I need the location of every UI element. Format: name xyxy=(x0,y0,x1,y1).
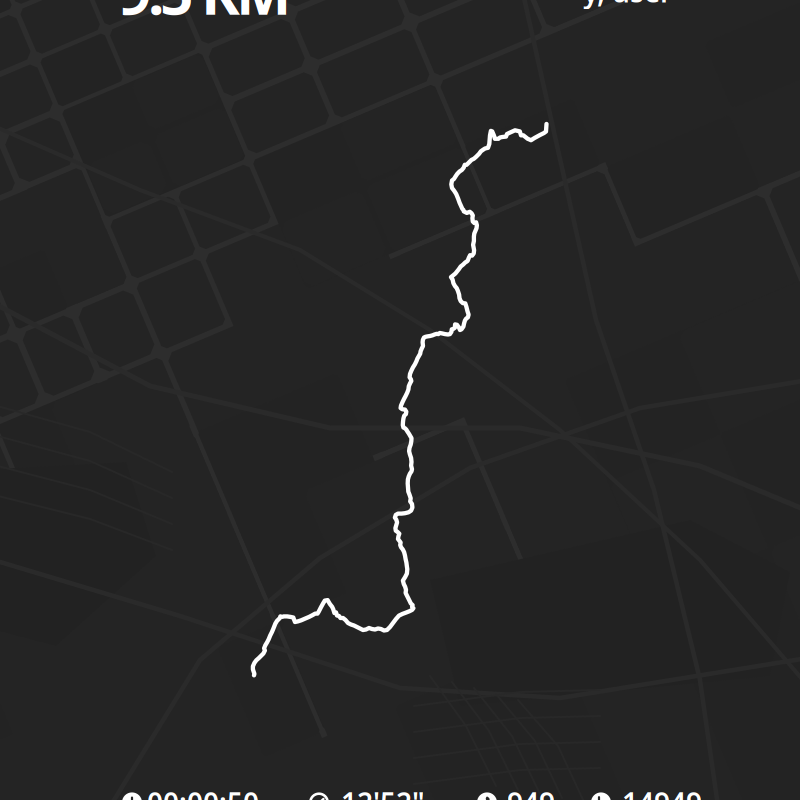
staticText: 9.5 KM xyxy=(118,0,291,31)
staticText: y, user xyxy=(583,0,672,10)
staticText: 14949 xyxy=(622,784,702,800)
staticText: 12'52" xyxy=(341,784,425,800)
staticText: 00:00:50 xyxy=(147,784,259,800)
button[interactable]: 12'52" xyxy=(309,784,425,800)
button[interactable]: 00:00:50 xyxy=(122,784,259,800)
button[interactable]: 949 xyxy=(477,784,555,800)
staticText: 949 xyxy=(507,784,555,800)
button[interactable]: 14949 xyxy=(591,784,702,800)
